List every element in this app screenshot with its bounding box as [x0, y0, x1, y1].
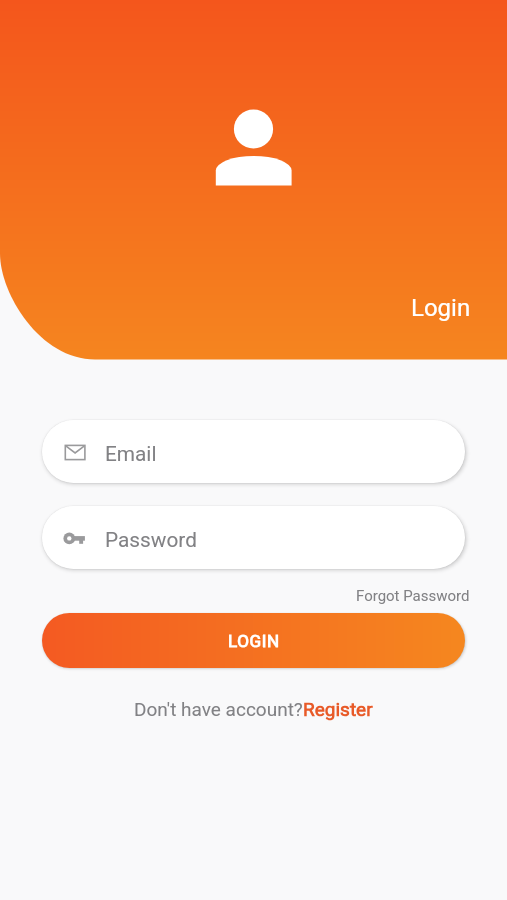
- button[interactable]: Email: [42, 420, 465, 483]
- staticText: Don't have account?: [134, 698, 303, 720]
- button[interactable]: Forgot Password: [356, 587, 470, 605]
- other: Email: [63, 442, 87, 466]
- staticText: Login: [411, 294, 471, 322]
- button[interactable]: Password: [42, 506, 465, 569]
- staticText: Forgot Password: [356, 587, 470, 605]
- staticText: Email: [105, 442, 157, 466]
- other: Password: [63, 528, 87, 552]
- staticText: Register: [303, 698, 373, 720]
- staticText: LOGIN: [228, 631, 280, 651]
- staticText: Password: [105, 528, 197, 552]
- button[interactable]: Register: [303, 698, 373, 720]
- button[interactable]: LOGIN: [42, 613, 465, 668]
